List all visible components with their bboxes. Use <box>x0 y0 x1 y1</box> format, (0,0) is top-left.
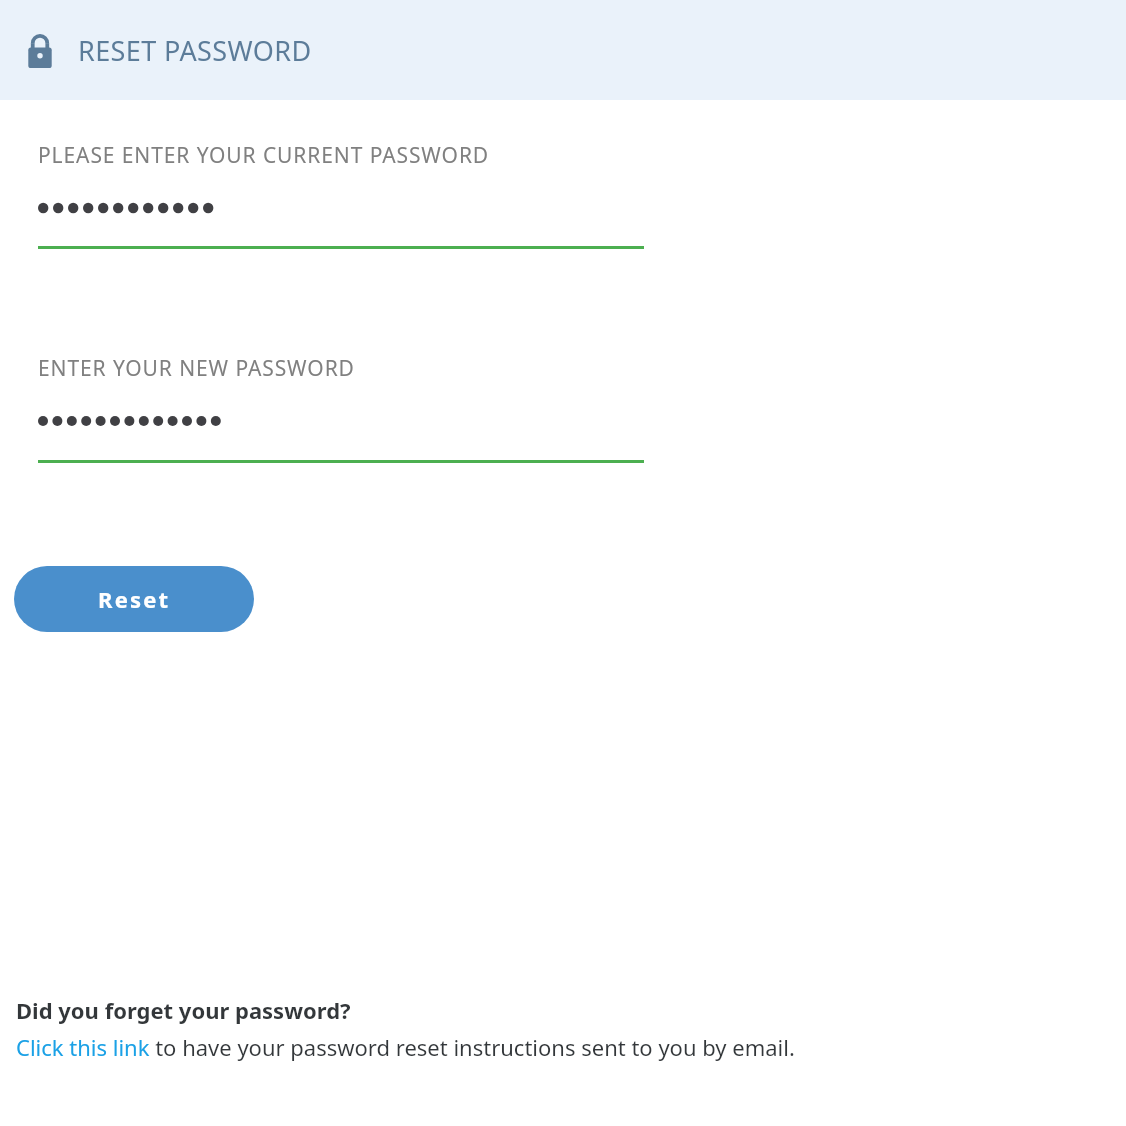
staticText: PLEASE ENTER YOUR CURRENT PASSWORD <box>38 141 490 170</box>
button[interactable]: Click this link to have your password re… <box>16 1032 795 1062</box>
staticText: ENTER YOUR NEW PASSWORD <box>38 354 355 383</box>
staticText: Reset <box>98 584 171 614</box>
other: Lock <box>27 34 53 68</box>
staticText: RESET PASSWORD <box>78 32 312 69</box>
button[interactable] <box>0 196 1126 220</box>
staticText: Did you forget your password? <box>16 995 351 1025</box>
button[interactable]: Reset <box>14 566 254 632</box>
button[interactable] <box>0 409 1126 433</box>
staticText: Click this link to have your password re… <box>16 1032 795 1062</box>
